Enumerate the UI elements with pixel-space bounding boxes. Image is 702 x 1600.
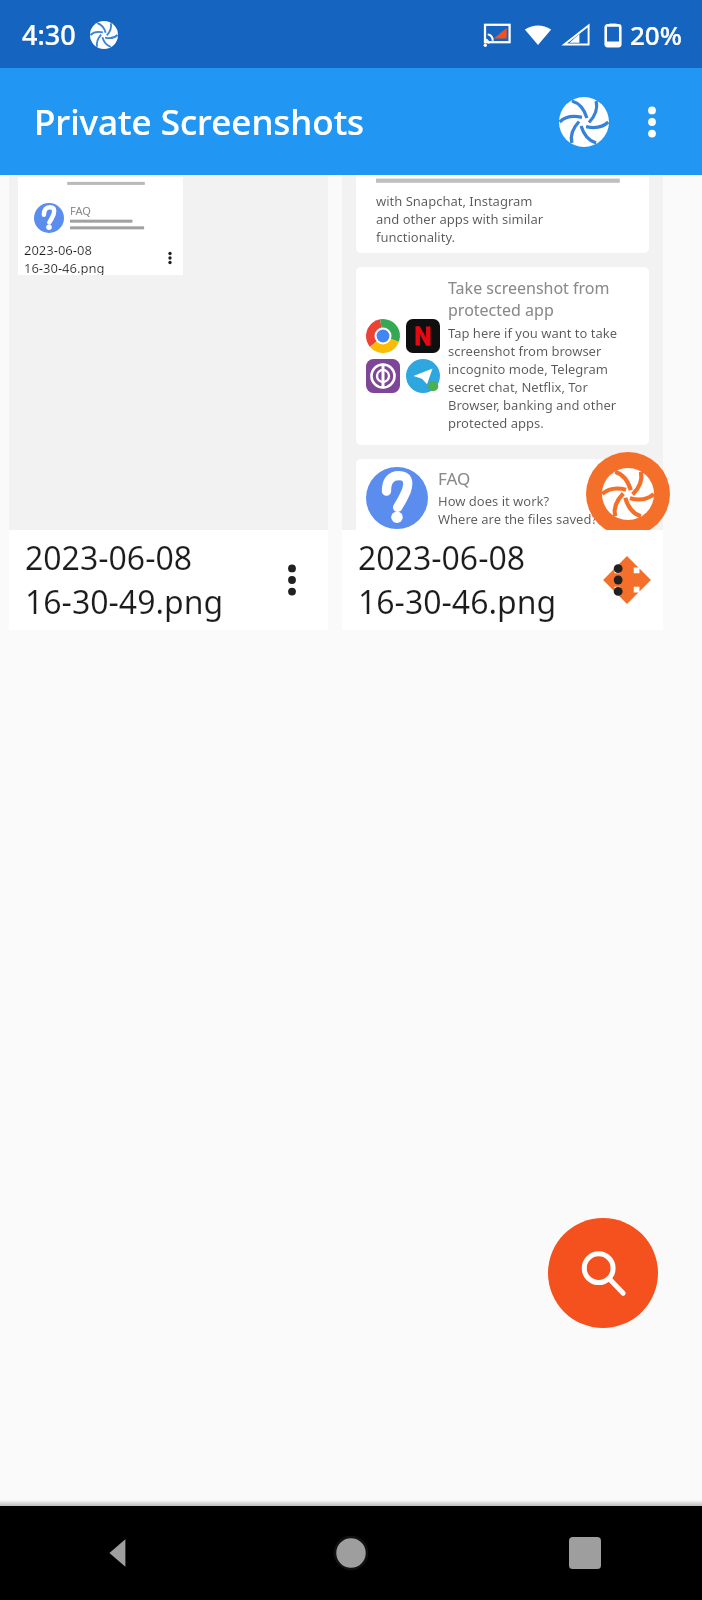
staticText: 16-30-46.png	[24, 259, 105, 275]
staticText: 16-30-49.png	[25, 580, 224, 624]
button[interactable]: Search	[548, 1218, 658, 1328]
staticText: Browser, banking and other	[448, 396, 617, 414]
button[interactable]: 2023-06-08	[342, 530, 663, 630]
staticText: Take screenshot from	[448, 277, 610, 299]
staticText: incognito mode, Telegram	[448, 360, 608, 378]
staticText: screenshot from browser	[448, 342, 602, 360]
staticText: 2023-06-08	[24, 241, 92, 259]
button[interactable]: FAQ	[9, 175, 328, 630]
staticText: protected app	[448, 299, 554, 321]
staticText: Tap here if you want to take	[448, 324, 617, 342]
button[interactable]: 2023-06-08	[9, 530, 328, 630]
staticText: and other apps with similar	[376, 210, 544, 228]
button[interactable]: More options	[620, 90, 684, 154]
staticText: protected apps.	[448, 414, 544, 432]
button[interactable]: Back	[0, 1506, 234, 1600]
staticText: 2023-06-08	[25, 536, 193, 580]
staticText: Private Screenshots	[34, 98, 365, 146]
button[interactable]: with Snapchat, Instagram	[342, 175, 663, 630]
button[interactable]: Take screenshot	[548, 86, 620, 158]
staticText: 16-30-46.png	[358, 580, 557, 624]
staticText: 4:30	[22, 16, 76, 53]
staticText: Where are the files saved?	[438, 510, 598, 528]
button[interactable]: Recent apps	[468, 1506, 702, 1600]
button[interactable]: Move file	[591, 544, 663, 616]
button[interactable]: File options	[256, 544, 328, 616]
staticText: 20%	[630, 17, 682, 52]
staticText: FAQ	[438, 467, 471, 490]
staticText: with Snapchat, Instagram	[376, 192, 533, 210]
staticText: FAQ	[70, 203, 91, 218]
staticText: 2023-06-08	[358, 536, 526, 580]
staticText: How does it work?	[438, 492, 550, 510]
staticText: secret chat, Netflix, Tor	[448, 378, 588, 396]
staticText: functionality.	[376, 228, 456, 245]
button[interactable]: Home	[234, 1506, 468, 1600]
